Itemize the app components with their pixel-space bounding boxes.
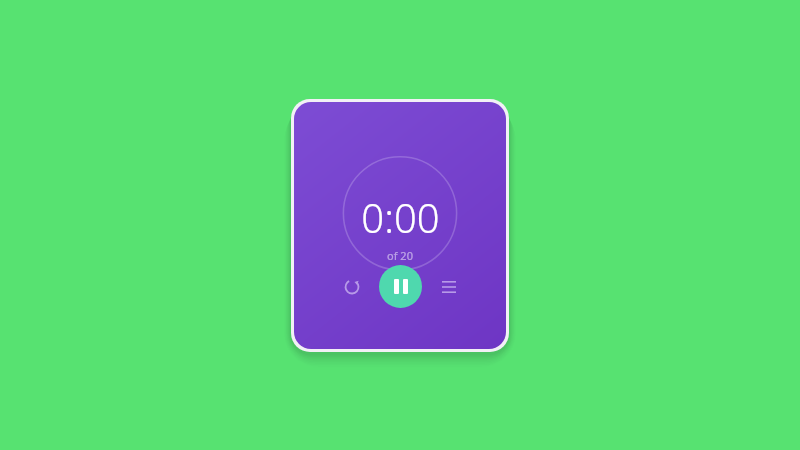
- button[interactable]: Pause: [379, 265, 422, 308]
- button[interactable]: Menu: [432, 270, 466, 304]
- staticText: 0:00: [361, 190, 440, 244]
- button[interactable]: Reset timer: [335, 270, 369, 304]
- staticText: of 20: [387, 248, 413, 263]
